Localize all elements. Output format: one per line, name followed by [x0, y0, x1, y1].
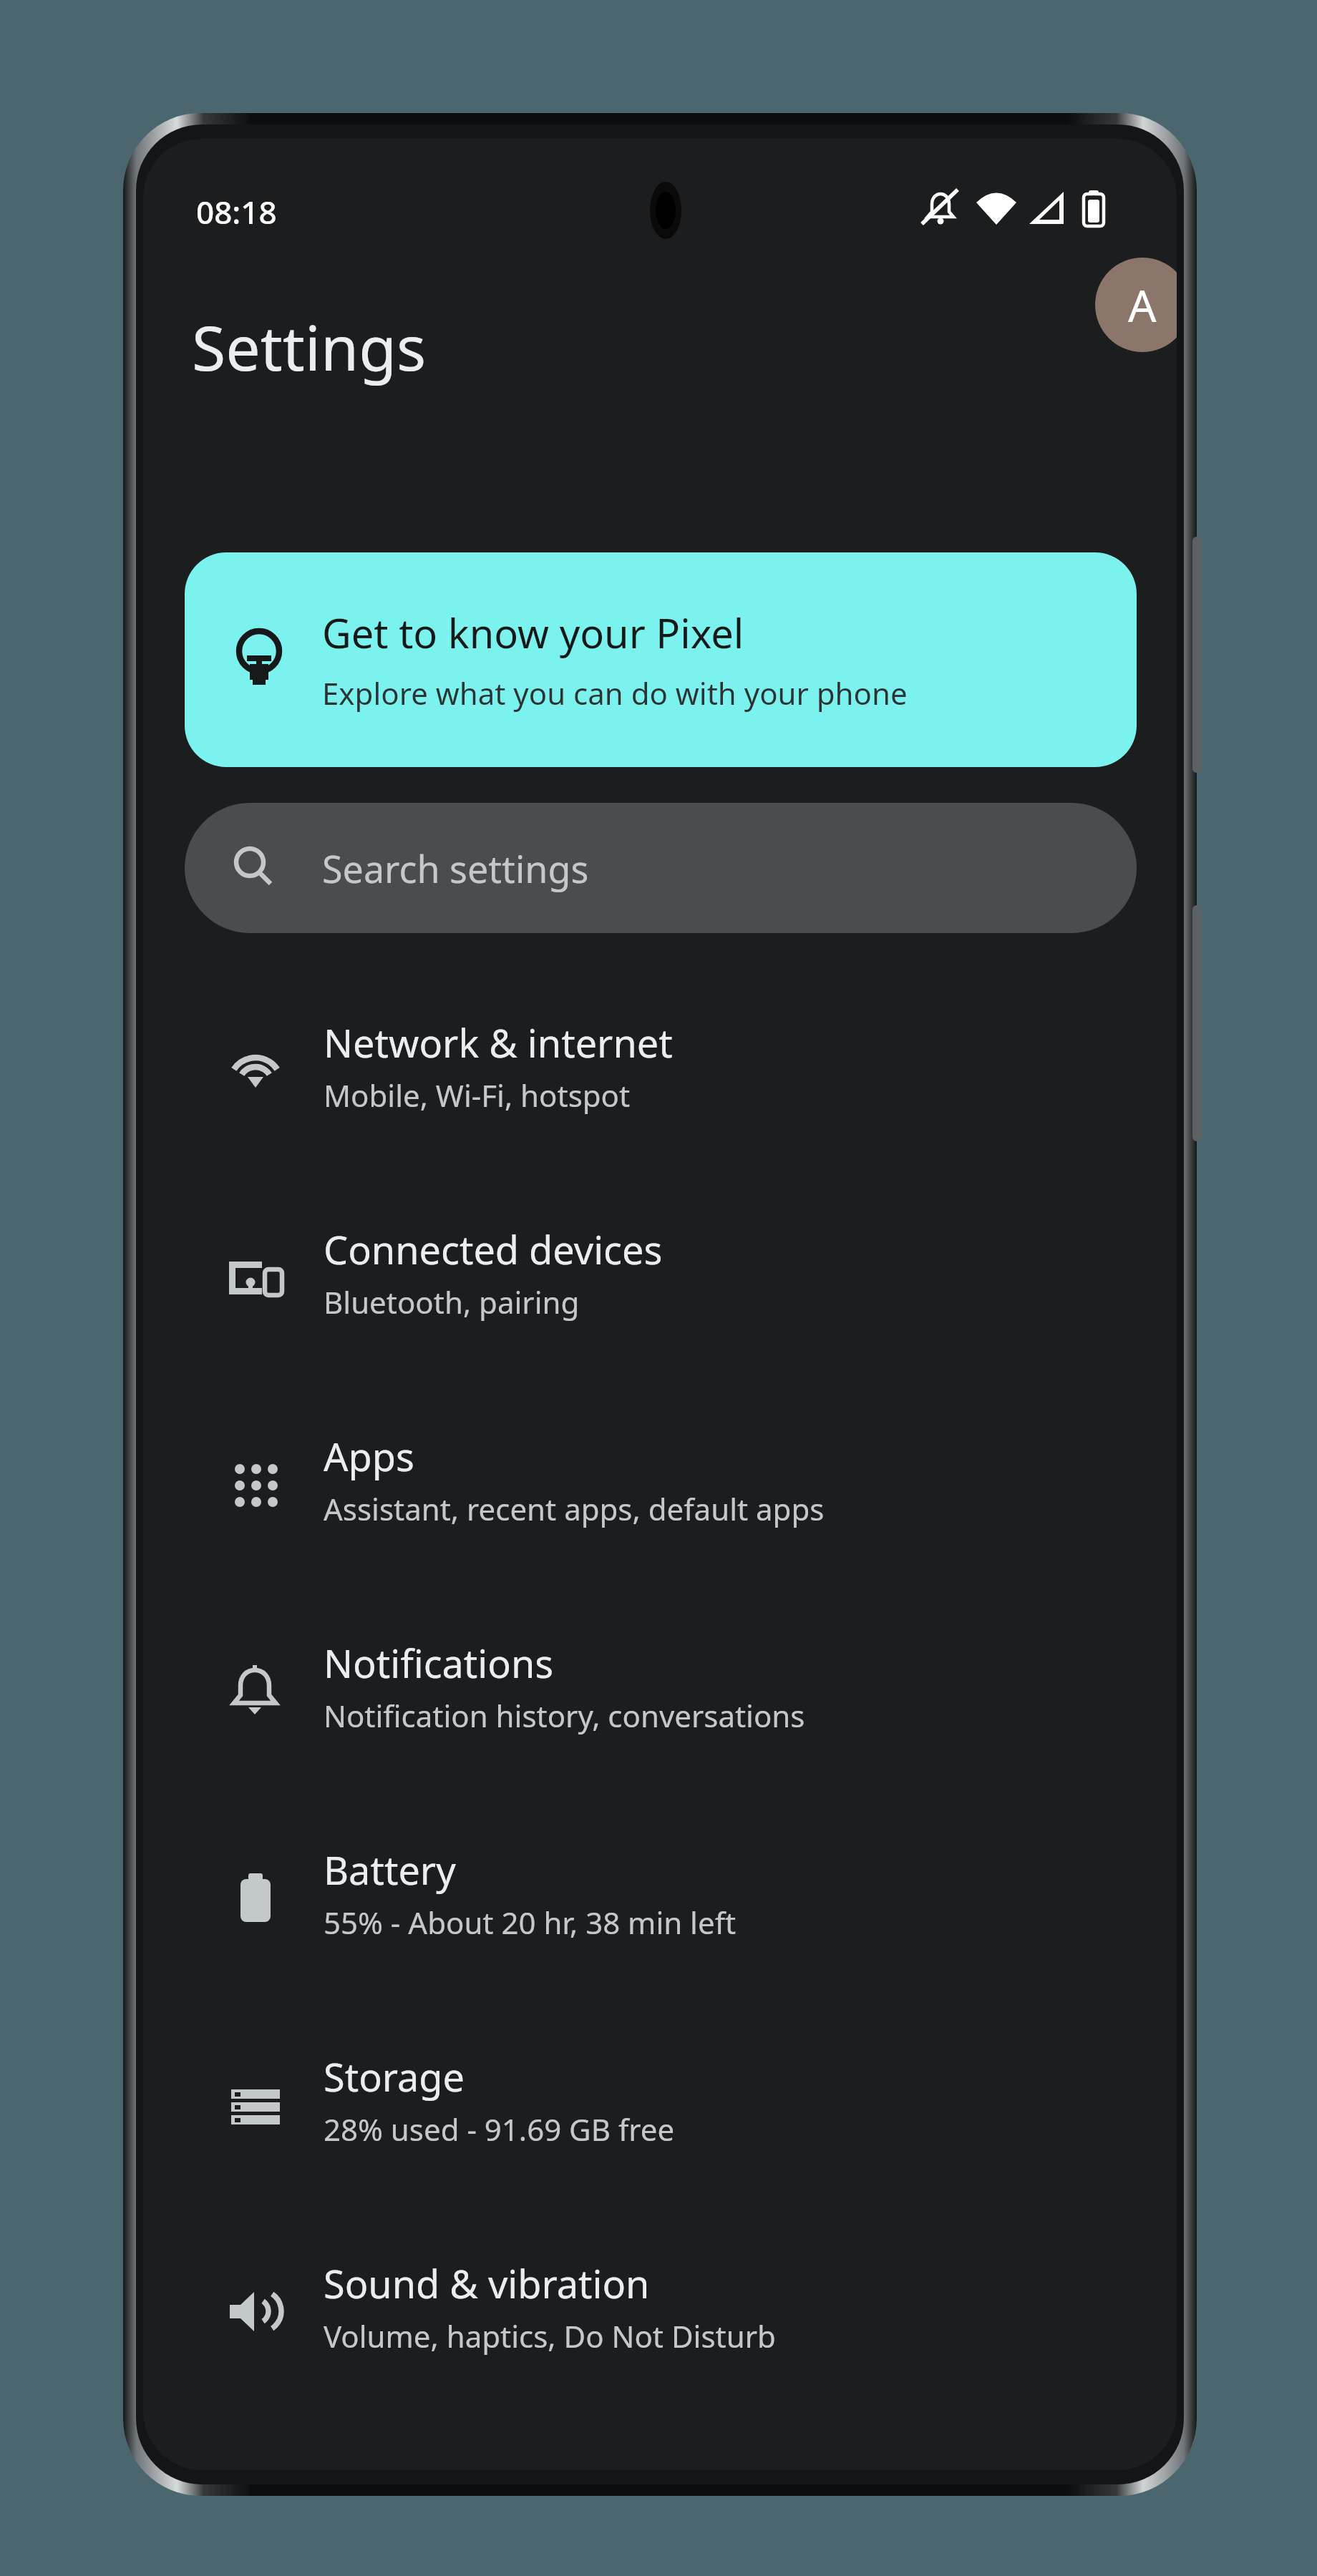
staticText: Settings	[192, 305, 427, 389]
staticText: Explore what you can do with your phone	[322, 673, 908, 713]
staticText: Get to know your Pixel	[322, 605, 744, 660]
button[interactable]: Network & internet	[157, 980, 1160, 1187]
button[interactable]: Connected devices	[157, 1187, 1160, 1394]
button[interactable]: Notifications	[157, 1601, 1160, 1807]
staticText: 08:18	[196, 190, 277, 233]
staticText: Notification history, conversations	[324, 1695, 805, 1736]
button[interactable]: Sound & vibration	[157, 2221, 1160, 2428]
staticText: Search settings	[322, 843, 589, 894]
staticText: Apps	[324, 1430, 414, 1483]
staticText: Connected devices	[324, 1223, 663, 1276]
staticText: Notifications	[324, 1636, 554, 1689]
button[interactable]: Apps	[157, 1394, 1160, 1601]
staticText: Battery	[324, 1843, 456, 1896]
button[interactable]: Search settings	[185, 803, 1137, 933]
button[interactable]: Account	[1095, 258, 1177, 352]
button[interactable]: Storage	[157, 2014, 1160, 2221]
staticText: Network & internet	[324, 1016, 673, 1069]
staticText: Sound & vibration	[324, 2257, 650, 2310]
button[interactable]: Battery	[157, 1807, 1160, 2014]
staticText: Mobile, Wi-Fi, hotspot	[324, 1075, 631, 1116]
staticText: Bluetooth, pairing	[324, 1282, 580, 1322]
staticText: Assistant, recent apps, default apps	[324, 1488, 825, 1529]
staticText: A	[1128, 275, 1157, 335]
button[interactable]: Get to know your Pixel	[185, 552, 1137, 767]
staticText: 28% used - 91.69 GB free	[324, 2109, 675, 2150]
staticText: Volume, haptics, Do Not Disturb	[324, 2316, 776, 2356]
staticText: 55% - About 20 hr, 38 min left	[324, 1902, 737, 1943]
staticText: Storage	[324, 2050, 465, 2103]
